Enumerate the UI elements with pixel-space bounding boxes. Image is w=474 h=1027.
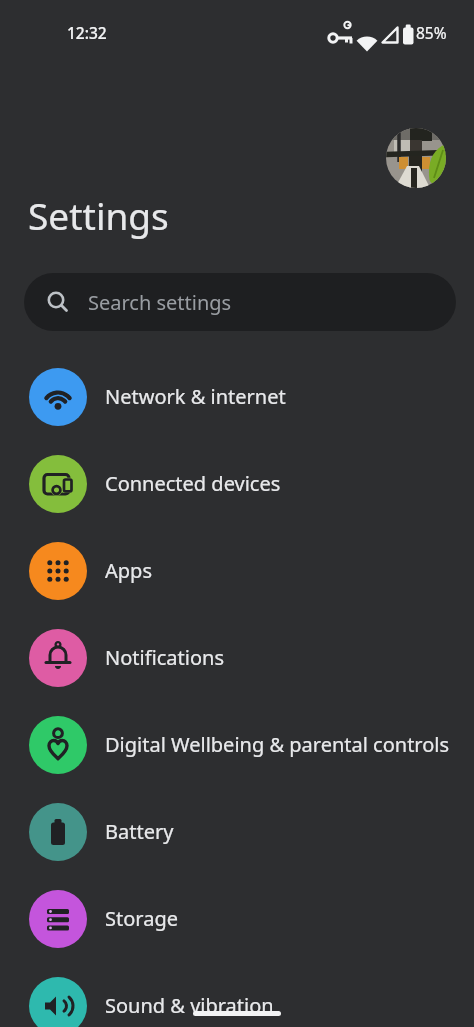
button[interactable]	[386, 128, 446, 188]
staticText: Search settings	[88, 289, 232, 316]
staticText: 12:32	[67, 22, 107, 43]
staticText: Connected devices	[105, 470, 281, 497]
button[interactable]: Connected devices	[0, 440, 474, 527]
button[interactable]: Digital Wellbeing & parental controls	[0, 701, 474, 788]
staticText: Digital Wellbeing & parental controls	[105, 731, 450, 758]
button[interactable]: Search settings	[24, 273, 456, 331]
staticText: Storage	[105, 905, 178, 932]
button[interactable]: Apps	[0, 527, 474, 614]
staticText: 85%	[416, 22, 447, 43]
staticText: Notifications	[105, 644, 224, 671]
button[interactable]: Battery	[0, 788, 474, 875]
button[interactable]: Network & internet	[0, 353, 474, 440]
button[interactable]: Sound & vibration	[0, 962, 474, 1027]
staticText: Settings	[28, 190, 169, 240]
staticText: Network & internet	[105, 383, 286, 410]
staticText: Apps	[105, 557, 152, 584]
staticText: Battery	[105, 818, 174, 845]
staticText: Sound & vibration	[105, 992, 274, 1019]
button[interactable]: Storage	[0, 875, 474, 962]
button[interactable]: Notifications	[0, 614, 474, 701]
